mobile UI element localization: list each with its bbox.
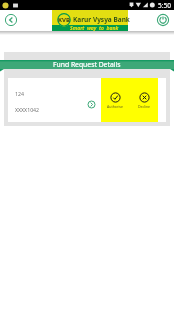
button[interactable]: Back	[0, 10, 22, 29]
button[interactable]: Decline	[130, 92, 158, 110]
staticText: Smart way to bank	[70, 25, 119, 32]
button[interactable]: Authorise	[101, 92, 129, 110]
staticText: KVB	[58, 16, 70, 24]
button[interactable]: View details	[83, 96, 100, 113]
staticText: XXXX1042	[15, 106, 40, 113]
staticText: Decline	[130, 104, 158, 109]
button[interactable]: 124	[8, 78, 166, 122]
staticText: 5:50	[158, 1, 171, 10]
staticText: Karur Vysya Bank	[73, 15, 130, 24]
staticText: Authorise	[101, 104, 129, 109]
button[interactable]: Logout	[152, 10, 174, 29]
staticText: 124	[15, 90, 24, 97]
staticText: Fund Request Details	[53, 60, 121, 69]
